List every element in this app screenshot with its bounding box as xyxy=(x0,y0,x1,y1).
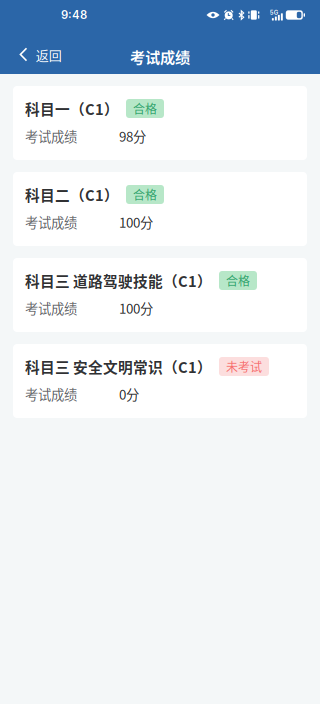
staticText: 考试成绩 xyxy=(25,212,77,232)
staticText: 合格 xyxy=(133,186,157,203)
staticText: 考试成绩 xyxy=(25,126,77,146)
button[interactable]: 科目二（C1） xyxy=(13,172,307,246)
staticText: 科目二（C1） xyxy=(25,184,119,205)
button[interactable]: 科目三 安全文明常识（C1） xyxy=(13,344,307,418)
staticText: 考试成绩 xyxy=(130,45,190,67)
staticText: 考试成绩 xyxy=(25,384,77,404)
staticText: 9:48 xyxy=(61,8,87,22)
staticText: 100分 xyxy=(119,298,153,318)
staticText: 考试成绩 xyxy=(25,298,77,318)
button[interactable]: 返回 xyxy=(0,30,72,74)
staticText: 0分 xyxy=(119,384,139,404)
staticText: 科目三 安全文明常识（C1） xyxy=(25,356,212,377)
staticText: 100分 xyxy=(119,212,153,232)
button[interactable]: 科目一（C1） xyxy=(13,86,307,160)
staticText: 5G xyxy=(270,9,278,16)
staticText: 返回 xyxy=(36,45,62,64)
staticText: 科目三 道路驾驶技能（C1） xyxy=(25,270,212,291)
staticText: 科目一（C1） xyxy=(25,98,119,119)
staticText: 未考试 xyxy=(226,358,262,375)
button[interactable]: 科目三 道路驾驶技能（C1） xyxy=(13,258,307,332)
staticText: 98分 xyxy=(119,126,146,146)
staticText: 合格 xyxy=(133,100,157,117)
staticText: 合格 xyxy=(226,272,250,289)
